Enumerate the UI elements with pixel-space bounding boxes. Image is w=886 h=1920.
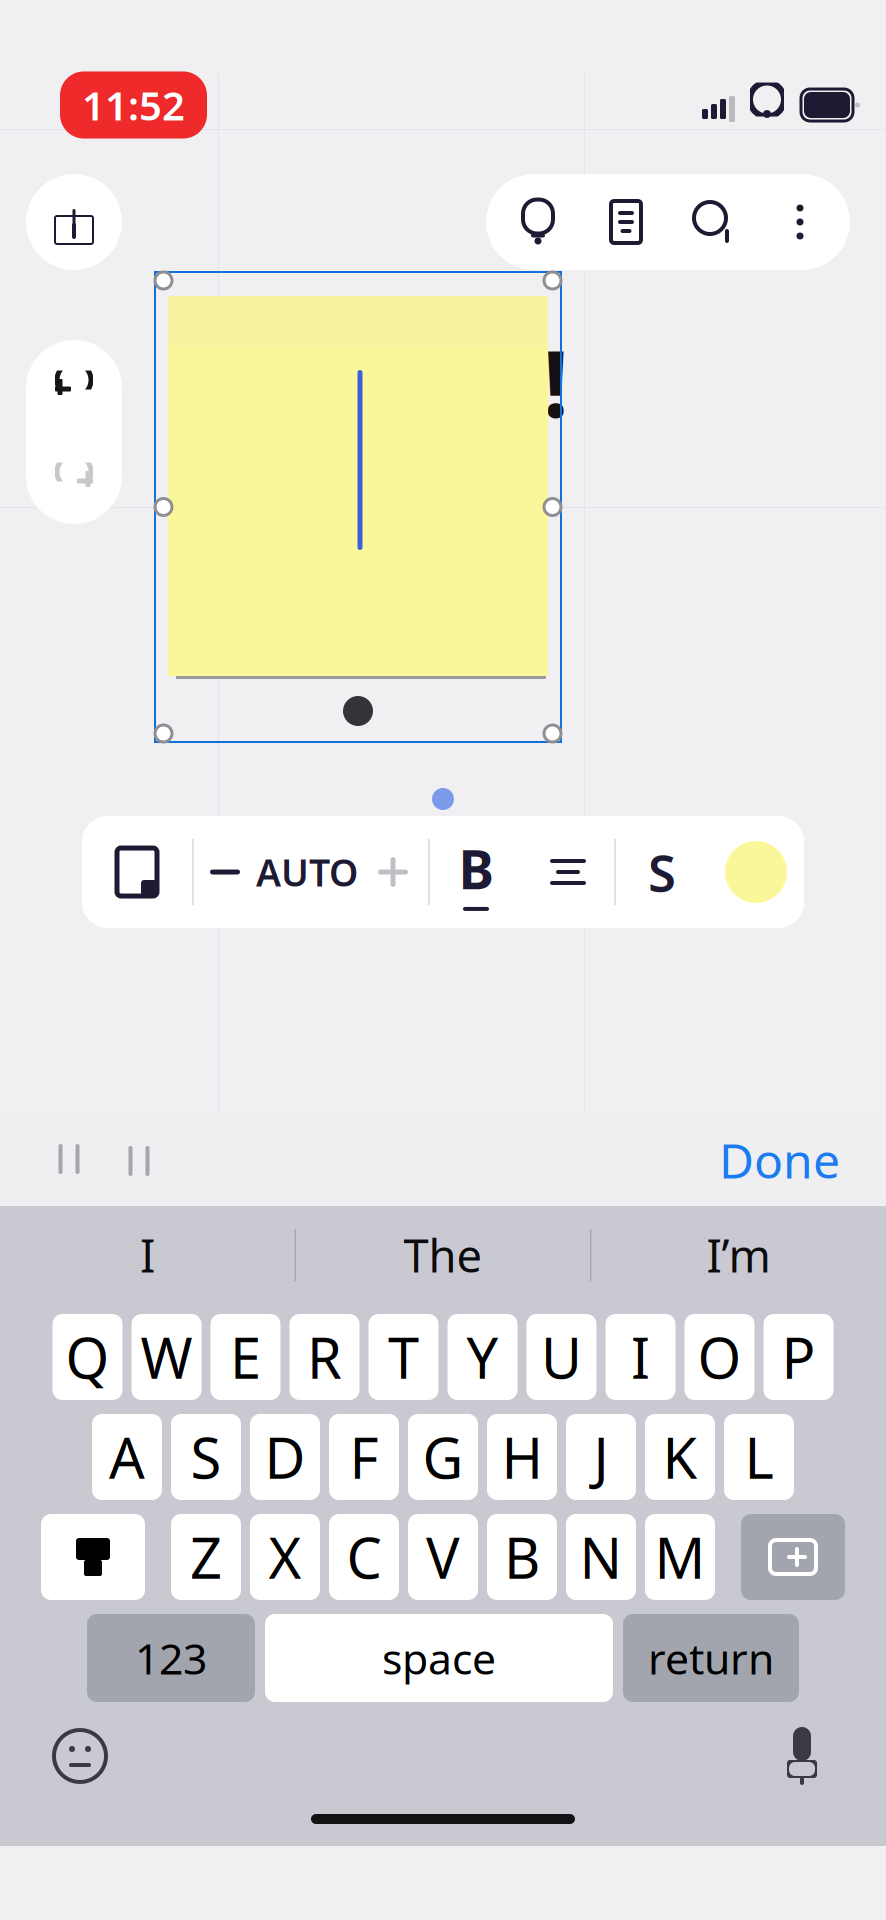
button[interactable]: Q [52, 1314, 122, 1400]
button[interactable]: More options [758, 179, 842, 265]
staticText: AUTO [256, 847, 358, 897]
button[interactable]: Search [670, 179, 758, 265]
button[interactable]: O [684, 1314, 754, 1400]
button[interactable]: I [605, 1314, 675, 1400]
button[interactable]: Increase size [358, 824, 428, 920]
button[interactable]: Pages [582, 179, 670, 265]
staticText: T [388, 1320, 419, 1394]
button[interactable]: Delete [741, 1514, 845, 1600]
button[interactable]: Color [708, 824, 804, 920]
staticText: The [403, 1225, 482, 1285]
button[interactable]: X [250, 1514, 320, 1600]
staticText: W [140, 1320, 192, 1394]
button[interactable]: Notifications [494, 179, 582, 265]
button[interactable]: Text style [616, 824, 708, 920]
staticText: C [346, 1520, 381, 1594]
button[interactable]: Home [26, 174, 122, 270]
button[interactable]: F [329, 1414, 399, 1500]
button[interactable]: J [566, 1414, 636, 1500]
staticText: Z [190, 1520, 222, 1594]
button[interactable]: I [0, 1206, 294, 1304]
staticText: G [422, 1420, 463, 1494]
staticText: I [140, 1225, 155, 1285]
button[interactable]: T [368, 1314, 438, 1400]
button[interactable]: Next field [104, 1125, 174, 1195]
button[interactable]: L [724, 1414, 794, 1500]
staticText: B [504, 1520, 540, 1594]
staticText: B [458, 833, 493, 904]
button[interactable]: Bold [430, 824, 522, 920]
button[interactable]: Dictate [766, 1717, 838, 1795]
staticText: space [382, 1630, 496, 1686]
button[interactable]: Previous field [34, 1125, 104, 1195]
button[interactable]: Redo [26, 432, 122, 524]
button[interactable]: space [265, 1614, 613, 1702]
button[interactable]: N [566, 1514, 636, 1600]
button[interactable]: H [487, 1414, 557, 1500]
button[interactable]: D [250, 1414, 320, 1500]
button[interactable]: P [763, 1314, 833, 1400]
button[interactable]: Emoji [44, 1720, 116, 1792]
staticText: E [230, 1320, 261, 1394]
button[interactable]: U [526, 1314, 596, 1400]
staticText: H [501, 1420, 542, 1494]
staticText: Q [65, 1320, 109, 1394]
staticText: J [593, 1420, 608, 1494]
staticText: K [662, 1420, 697, 1494]
button[interactable]: Shift [41, 1514, 145, 1600]
button[interactable]: W [131, 1314, 201, 1400]
staticText: N [579, 1520, 622, 1594]
button[interactable]: return [623, 1614, 799, 1702]
button[interactable]: Alignment [522, 824, 614, 920]
button[interactable]: G [408, 1414, 478, 1500]
staticText: X [268, 1520, 301, 1594]
button[interactable]: Z [171, 1514, 241, 1600]
button[interactable]: Y [447, 1314, 517, 1400]
button[interactable]: Decrease size [194, 824, 256, 920]
button[interactable]: Note style [82, 824, 192, 920]
staticText: Done [719, 1128, 840, 1192]
button[interactable]: I’m [591, 1206, 885, 1304]
button[interactable]: M [645, 1514, 715, 1600]
staticText: S [190, 1420, 221, 1494]
staticText: ! [543, 322, 569, 442]
staticText: I’m [706, 1225, 770, 1285]
staticText: I [631, 1320, 650, 1394]
staticText: O [697, 1320, 741, 1394]
button[interactable]: E [210, 1314, 280, 1400]
staticText: P [781, 1320, 815, 1394]
button[interactable]: A [92, 1414, 162, 1500]
staticText: S [648, 838, 676, 906]
staticText: 123 [135, 1630, 207, 1686]
staticText: 1. Hell [208, 322, 486, 442]
button[interactable]: Done [701, 1125, 858, 1195]
button[interactable]: C [329, 1514, 399, 1600]
staticText: 11:52 [82, 78, 185, 131]
button[interactable]: K [645, 1414, 715, 1500]
button[interactable]: Undo [26, 340, 122, 432]
button[interactable]: 123 [87, 1614, 255, 1702]
staticText: R [307, 1320, 342, 1394]
staticText: F [349, 1420, 378, 1494]
button[interactable]: R [289, 1314, 359, 1400]
staticText: D [264, 1420, 305, 1494]
staticText: L [744, 1420, 773, 1494]
button[interactable]: B [487, 1514, 557, 1600]
staticText: M [654, 1520, 705, 1594]
staticText: return [648, 1630, 774, 1686]
staticText: U [541, 1320, 582, 1394]
staticText: A [109, 1420, 145, 1494]
staticText: V [426, 1520, 460, 1594]
button[interactable]: V [408, 1514, 478, 1600]
button[interactable]: S [171, 1414, 241, 1500]
staticText: Y [466, 1320, 498, 1394]
button[interactable]: The [296, 1206, 590, 1304]
